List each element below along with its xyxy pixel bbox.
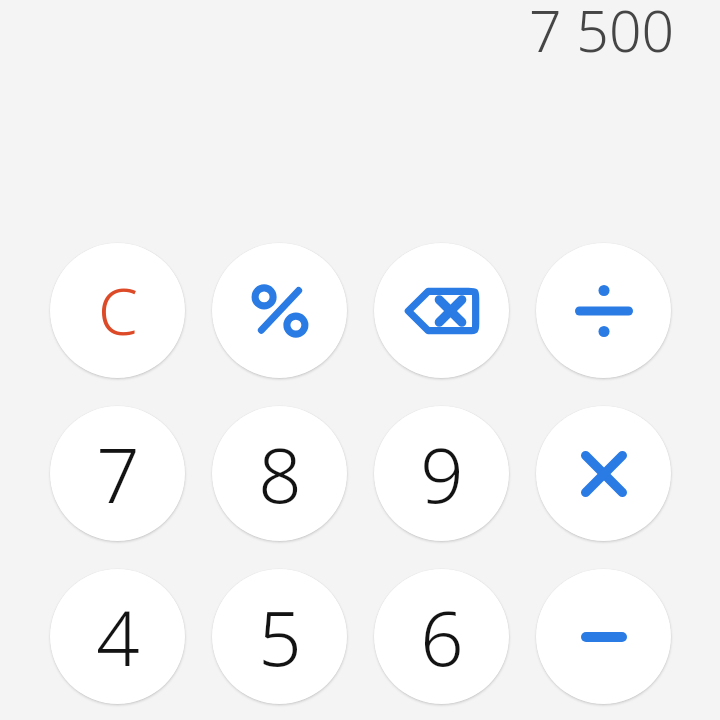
staticText: 8 [258, 422, 302, 526]
staticText: 9 [420, 422, 464, 526]
button[interactable]: Percent [212, 243, 347, 378]
staticText: 7 [96, 422, 140, 526]
button[interactable]: Minus [536, 569, 671, 704]
button[interactable]: 7 [50, 406, 185, 541]
button[interactable]: 4 [50, 569, 185, 704]
button[interactable]: 6 [374, 569, 509, 704]
button[interactable]: Backspace [374, 243, 509, 378]
button[interactable]: Multiply [536, 406, 671, 541]
button[interactable]: 9 [374, 406, 509, 541]
staticText: 4 [96, 585, 140, 689]
staticText: 6 [420, 585, 464, 689]
button[interactable]: 5 [212, 569, 347, 704]
button[interactable]: Divide [536, 243, 671, 378]
button[interactable]: 8 [212, 406, 347, 541]
button[interactable]: C [50, 243, 185, 378]
staticText: 5 [258, 585, 302, 689]
staticText: 7 500 [528, 0, 674, 69]
staticText: C [98, 267, 138, 354]
